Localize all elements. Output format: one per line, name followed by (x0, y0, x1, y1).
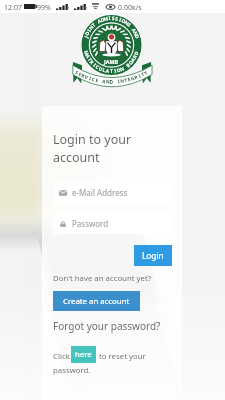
staticText: to reset your (99, 351, 146, 362)
staticText: Forgot your password? (53, 319, 161, 333)
button[interactable]: Login (134, 245, 172, 266)
staticText: here (75, 349, 92, 360)
staticText: e-Mail Address (72, 187, 128, 198)
staticText: Login (142, 250, 164, 261)
staticText: 12:07 (4, 3, 22, 13)
staticText: Password (72, 218, 109, 229)
button[interactable]: here (71, 346, 96, 363)
staticText: Login to your account (53, 131, 132, 166)
button[interactable]: Create an account (53, 291, 140, 311)
staticText: password. (53, 365, 91, 376)
button[interactable]: e-Mail Address (53, 182, 172, 203)
staticText: 0.00k/s (118, 3, 142, 13)
staticText: Click (53, 351, 70, 362)
staticText: 99% (37, 3, 51, 13)
button[interactable]: Password (53, 213, 172, 234)
staticText: Create an account (63, 296, 130, 307)
staticText: Don't have an account yet? (53, 273, 152, 284)
